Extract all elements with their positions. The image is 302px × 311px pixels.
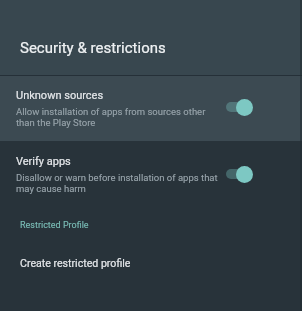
staticText: Restricted Profile: [20, 220, 89, 231]
button[interactable]: Unknown sources toggle, on: [224, 98, 254, 116]
staticText: Disallow or warn before installation of …: [16, 172, 218, 194]
button[interactable]: Verify apps: [0, 141, 302, 203]
staticText: Security & restrictions: [20, 39, 166, 57]
button[interactable]: Create restricted profile: [0, 241, 302, 281]
staticText: Unknown sources: [16, 89, 104, 102]
button[interactable]: Unknown sources: [0, 76, 302, 141]
staticText: Verify apps: [16, 155, 71, 168]
staticText: Create restricted profile: [20, 257, 131, 269]
staticText: Allow installation of apps from sources …: [16, 106, 206, 128]
button[interactable]: Verify apps toggle, on: [224, 165, 254, 183]
